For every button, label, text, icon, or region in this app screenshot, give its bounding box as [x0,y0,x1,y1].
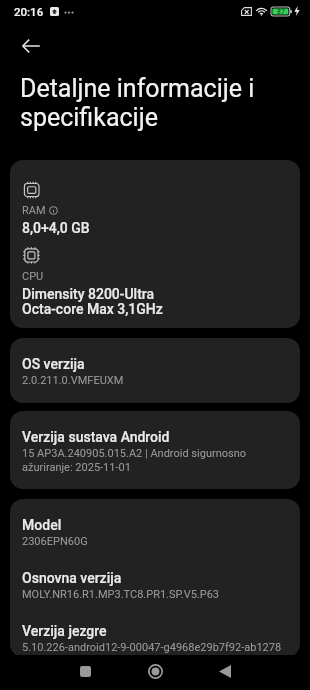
button[interactable]: RAM [10,160,300,328]
button[interactable]: Recent apps [55,655,115,688]
staticText: MOLY.NR16.R1.MP3.TC8.PR1.SP.V5.P63 [22,588,220,601]
button[interactable]: Verzija sustava Android [10,411,300,489]
staticText: CPU [22,270,44,283]
staticText: 20:16 [14,5,44,18]
staticText: Model [22,517,62,533]
button[interactable]: Home [125,655,185,688]
button[interactable]: Model [10,499,300,657]
staticText: RAM [22,204,46,217]
button[interactable]: OS verzija [10,338,300,403]
staticText: 8,0+4,0 GB [22,220,90,236]
button[interactable]: Back [13,28,49,64]
staticText: Verzija sustava Android [22,429,170,445]
staticText: Dimensity 8200-Ultra Octa-core Max 3,1GH… [22,286,163,318]
staticText: Detaljne informacije i specifikacije [20,74,270,132]
staticText: OS verzija [22,356,85,372]
staticText: 15 AP3A.240905.015.A2 | Android sigurnos… [22,447,288,474]
staticText: 2306EPN60G [22,535,88,548]
staticText: 2.0.211.0.VMFEUXM [22,374,124,387]
staticText: 87 [277,8,285,16]
staticText: 5.10.226-android12-9-00047-g4968e29b7f92… [22,641,282,654]
staticText: Verzija jezgre [22,623,107,639]
staticText: Osnovna verzija [22,570,122,586]
button[interactable]: Back [195,655,255,688]
